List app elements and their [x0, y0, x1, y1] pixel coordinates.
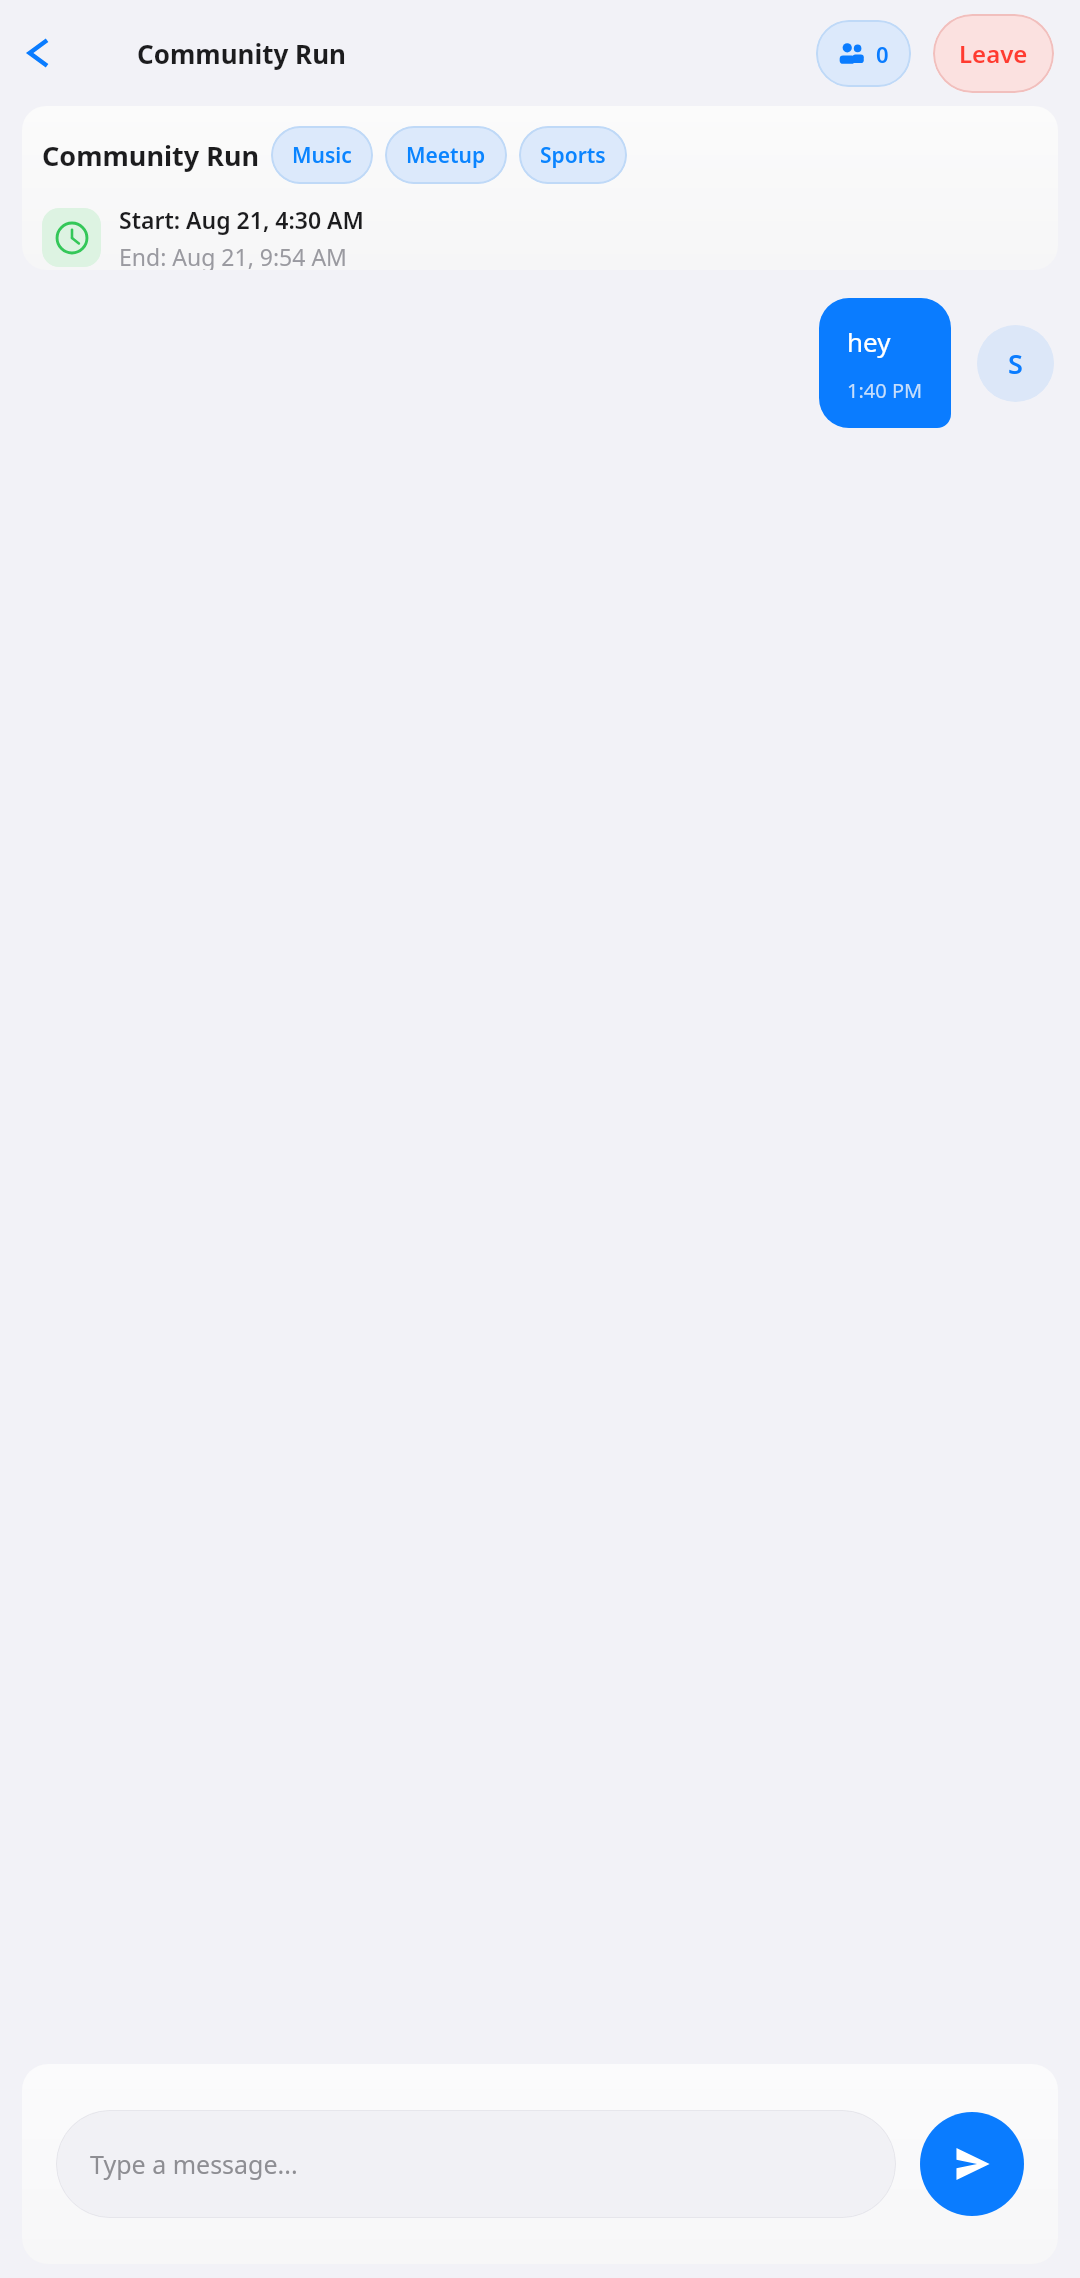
staticText: 1:40 PM: [847, 377, 923, 404]
button[interactable]: S: [977, 325, 1054, 402]
staticText: Music: [292, 141, 352, 170]
button[interactable]: Sports: [519, 126, 627, 184]
button[interactable]: Type a message...: [56, 2110, 896, 2218]
button[interactable]: hey: [819, 298, 951, 428]
staticText: 0: [876, 39, 889, 69]
button[interactable]: Leave: [933, 14, 1054, 93]
button[interactable]: Community Run: [22, 106, 1058, 270]
staticText: End: Aug 21, 9:54 AM: [119, 241, 347, 270]
staticText: Sports: [540, 141, 606, 170]
staticText: Type a message...: [90, 2147, 298, 2181]
staticText: S: [1008, 345, 1023, 382]
staticText: Start: Aug 21, 4:30 AM: [119, 204, 364, 235]
button[interactable]: Music: [271, 126, 373, 184]
staticText: hey: [847, 324, 891, 359]
button[interactable]: Meetup: [385, 126, 507, 184]
button[interactable]: Back: [10, 25, 66, 81]
staticText: Meetup: [406, 141, 486, 170]
button[interactable]: Send: [920, 2112, 1024, 2216]
staticText: Community Run: [42, 137, 259, 174]
button[interactable]: 0: [816, 20, 911, 87]
staticText: Community Run: [137, 36, 346, 71]
staticText: Leave: [959, 37, 1028, 70]
